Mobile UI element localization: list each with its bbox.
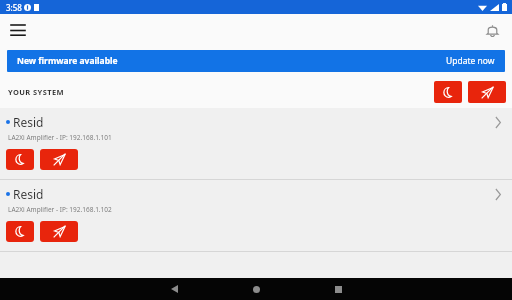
button[interactable]: Night mode <box>6 149 34 170</box>
staticText: YOUR SYSTEM <box>8 87 64 97</box>
button[interactable]: Open navigation menu <box>4 16 32 44</box>
button[interactable]: Notifications <box>478 16 506 44</box>
button[interactable]: Night mode <box>6 221 34 242</box>
button[interactable]: Mute <box>40 221 78 242</box>
button[interactable]: New firmware available <box>7 50 505 72</box>
button[interactable]: Back <box>133 278 215 300</box>
staticText: Update now <box>446 55 495 67</box>
staticText: LA2Xi Amplifier - IP: 192.168.1.101 <box>8 133 112 142</box>
staticText: Resid <box>13 114 44 130</box>
button[interactable]: Open Resid details <box>488 112 508 132</box>
button[interactable]: Resid <box>0 180 512 252</box>
button[interactable]: Night mode <box>434 81 462 103</box>
staticText: LA2Xi Amplifier - IP: 192.168.1.102 <box>8 205 112 214</box>
staticText: Resid <box>13 186 44 202</box>
button[interactable]: Mute <box>40 149 78 170</box>
button[interactable]: Mute <box>468 81 506 103</box>
button[interactable]: Home <box>215 278 297 300</box>
button[interactable]: Open Resid details <box>488 184 508 204</box>
button[interactable]: Resid <box>0 108 512 180</box>
staticText: 3:58 <box>6 2 22 13</box>
staticText: New firmware available <box>17 55 118 67</box>
button[interactable]: Recent apps <box>297 278 379 300</box>
